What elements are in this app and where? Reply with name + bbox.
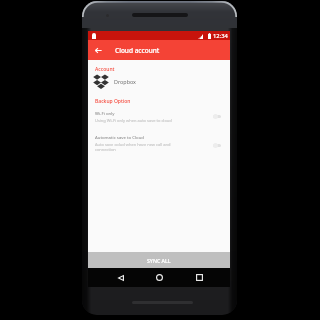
staticText: 12:34 bbox=[213, 32, 228, 40]
staticText: Auto save colud when have new call and c… bbox=[95, 142, 171, 152]
button[interactable]: Recents bbox=[190, 268, 208, 287]
button[interactable]: Wi-Fi only bbox=[88, 110, 230, 123]
button[interactable]: Back bbox=[91, 43, 105, 57]
staticText: SYNC ALL bbox=[147, 257, 171, 264]
button[interactable]: Dropbox bbox=[93, 71, 235, 91]
staticText: Backup Option bbox=[95, 98, 131, 105]
staticText: Wi-Fi only bbox=[95, 110, 115, 116]
staticText: Account bbox=[95, 66, 115, 73]
staticText: Automatic save to Cloud bbox=[95, 134, 145, 140]
button[interactable]: Automatic save to Cloud bbox=[88, 134, 230, 152]
staticText: Using Wi-Fi only when auto save to cloud bbox=[95, 118, 172, 123]
button[interactable]: Home bbox=[150, 268, 168, 287]
staticText: Cloud account bbox=[115, 46, 160, 55]
button[interactable]: Back bbox=[112, 268, 130, 287]
staticText: Dropbox bbox=[114, 78, 136, 85]
button[interactable]: SYNC ALL bbox=[88, 252, 230, 268]
